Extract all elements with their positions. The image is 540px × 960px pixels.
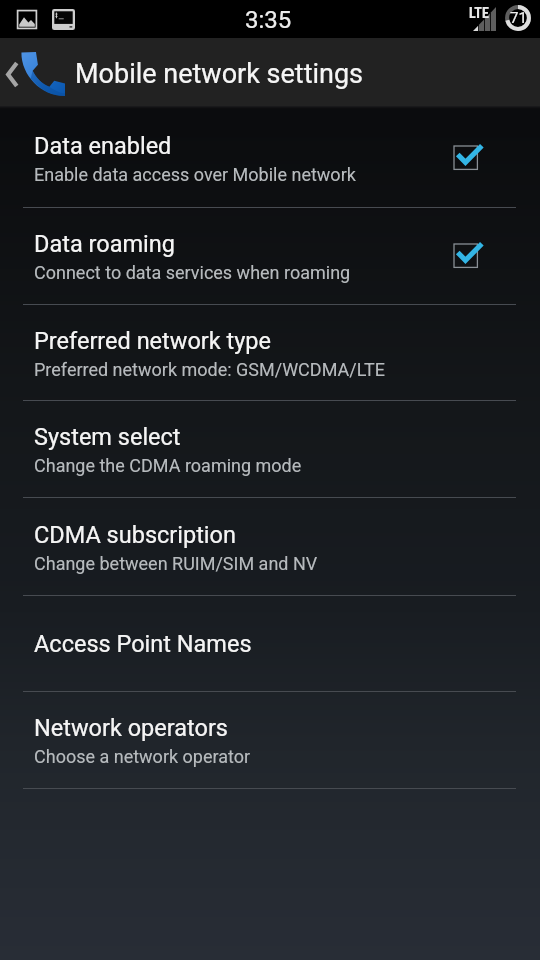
staticText: Data enabled bbox=[34, 132, 172, 160]
button[interactable]: Access Point Names bbox=[0, 596, 540, 692]
button[interactable]: System select bbox=[0, 401, 540, 498]
staticText: Mobile network settings bbox=[75, 58, 364, 90]
button[interactable]: Toggle Data enabled bbox=[446, 135, 494, 183]
button[interactable]: Data roaming bbox=[0, 208, 540, 305]
button[interactable]: Navigate up bbox=[0, 38, 540, 106]
staticText: Network operators bbox=[34, 714, 228, 742]
staticText: Access Point Names bbox=[34, 630, 252, 658]
staticText: Data roaming bbox=[34, 230, 175, 258]
button[interactable]: Toggle Data roaming bbox=[446, 233, 494, 281]
staticText: CDMA subscription bbox=[34, 521, 236, 549]
button[interactable]: CDMA subscription bbox=[0, 498, 540, 596]
staticText: Change between RUIM/SIM and NV bbox=[34, 553, 318, 574]
staticText: Preferred network type bbox=[34, 327, 271, 355]
staticText: Enable data access over Mobile network bbox=[34, 164, 356, 185]
staticText: Choose a network operator bbox=[34, 746, 251, 767]
staticText: Connect to data services when roaming bbox=[34, 262, 351, 283]
button[interactable]: Data enabled bbox=[0, 109, 540, 208]
staticText: Preferred network mode: GSM/WCDMA/LTE bbox=[34, 359, 385, 380]
staticText: System select bbox=[34, 423, 181, 451]
button[interactable]: Preferred network type bbox=[0, 305, 540, 401]
staticText: 71 bbox=[510, 9, 527, 27]
staticText: Change the CDMA roaming mode bbox=[34, 455, 302, 476]
staticText: LTE bbox=[469, 5, 489, 21]
staticText: 3:35 bbox=[245, 6, 292, 34]
button[interactable]: Network operators bbox=[0, 692, 540, 789]
